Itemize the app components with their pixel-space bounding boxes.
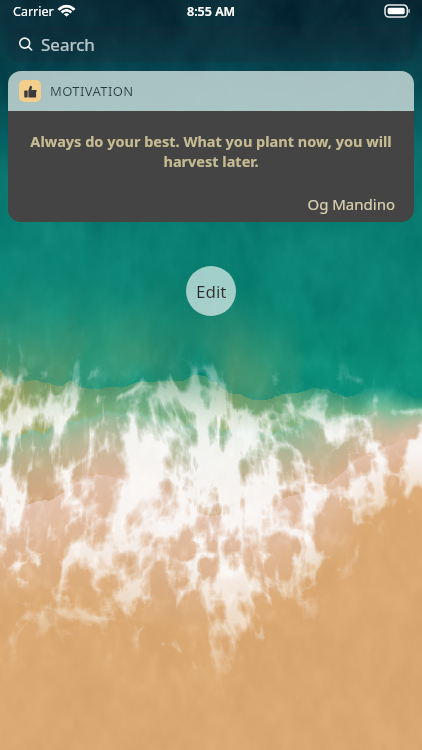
staticText: Always do your best. What you plant now,… bbox=[27, 131, 395, 172]
staticText: Carrier bbox=[13, 3, 54, 20]
button[interactable]: Edit bbox=[186, 266, 236, 316]
staticText: Og Mandino bbox=[27, 194, 395, 214]
button[interactable]: Search bbox=[8, 26, 414, 62]
staticText: MOTIVATION bbox=[50, 82, 134, 100]
staticText: Edit bbox=[196, 280, 227, 303]
button[interactable]: MOTIVATION bbox=[8, 71, 414, 222]
staticText: 8:55 AM bbox=[187, 3, 236, 20]
staticText: Search bbox=[41, 33, 95, 56]
